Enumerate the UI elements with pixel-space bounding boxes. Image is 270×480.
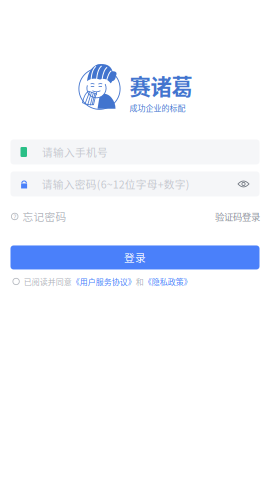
staticText: 《隐私政策》	[144, 276, 192, 287]
button[interactable]: ?	[11, 209, 66, 224]
staticText: 验证码登录	[215, 210, 260, 223]
staticText: 已阅读并同意	[24, 276, 72, 287]
button[interactable]: Show password	[237, 180, 249, 188]
staticText: 忘记密码	[22, 209, 66, 224]
button[interactable]: 验证码登录	[215, 210, 260, 223]
staticText: 成功企业的标配	[129, 102, 185, 113]
button[interactable]: 登录	[10, 245, 259, 269]
button[interactable]: Agree to the terms	[12, 278, 20, 285]
button[interactable]: 《隐私政策》	[144, 276, 192, 287]
button[interactable]: 《用户服务协议》	[72, 276, 136, 287]
staticText: 《用户服务协议》	[72, 276, 136, 287]
staticText: 和	[136, 276, 144, 287]
staticText: ?	[13, 212, 16, 221]
staticText: 请输入密码(6~12位字母+数字)	[42, 176, 190, 192]
staticText: 登录	[124, 250, 146, 265]
staticText: 赛诸葛	[129, 70, 192, 101]
staticText: 请输入手机号	[42, 144, 108, 160]
